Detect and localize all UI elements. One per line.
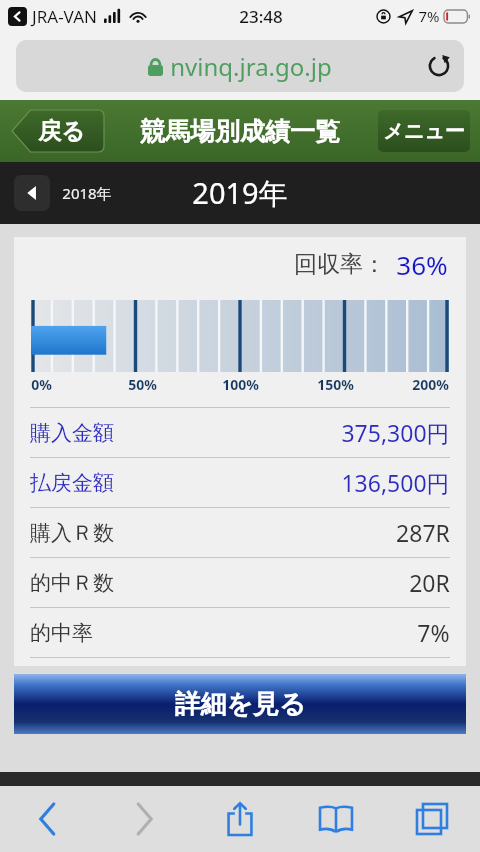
staticText: nvinq.jra.go.jp (170, 50, 332, 83)
button[interactable]: Previous year (14, 175, 50, 211)
staticText: JRA-VAN (32, 5, 97, 28)
button[interactable]: 的中率 (30, 608, 450, 657)
staticText: 詳細を見る (174, 688, 306, 721)
staticText: 50% (128, 375, 157, 393)
staticText: 払戻金額 (30, 470, 114, 496)
staticText: 136,500円 (341, 467, 450, 498)
staticText: 7% (418, 6, 440, 26)
staticText: 2019年 (192, 173, 288, 213)
button[interactable]: Back (0, 786, 96, 852)
button[interactable]: Share (192, 786, 288, 852)
button[interactable]: 詳細を見る (14, 674, 466, 734)
button[interactable]: 戻る (12, 110, 104, 152)
staticText: 回収率： (294, 250, 386, 279)
staticText: 375,300円 (341, 417, 450, 448)
button[interactable]: Tabs (384, 786, 480, 852)
staticText: 150% (317, 375, 354, 393)
staticText: 戻る (38, 117, 85, 146)
button[interactable]: Reload (422, 49, 456, 83)
staticText: 287R (396, 517, 450, 548)
staticText: 的中Ｒ数 (30, 570, 114, 596)
button[interactable]: Forward (96, 786, 192, 852)
staticText: 2018年 (62, 183, 112, 203)
staticText: メニュー (383, 119, 465, 144)
staticText: 購入金額 (30, 420, 114, 446)
button[interactable]: nvinq.jra.go.jp (16, 40, 464, 92)
staticText: 36% (396, 247, 448, 282)
staticText: 0% (31, 375, 52, 393)
button[interactable]: メニュー (378, 110, 470, 152)
staticText: 競馬場別成績一覧 (140, 116, 340, 147)
staticText: 23:48 (239, 5, 283, 28)
button[interactable]: 払戻金額 (30, 458, 450, 507)
staticText: 100% (222, 375, 259, 393)
button[interactable]: 的中Ｒ数 (30, 558, 450, 607)
staticText: 的中率 (30, 620, 93, 646)
staticText: 7% (417, 617, 450, 648)
button[interactable]: 購入金額 (30, 408, 450, 457)
button[interactable]: Bookmarks (288, 786, 384, 852)
staticText: 200% (412, 375, 449, 393)
staticText: 購入Ｒ数 (30, 520, 114, 546)
staticText: 20R (409, 567, 450, 598)
button[interactable]: 購入Ｒ数 (30, 508, 450, 557)
